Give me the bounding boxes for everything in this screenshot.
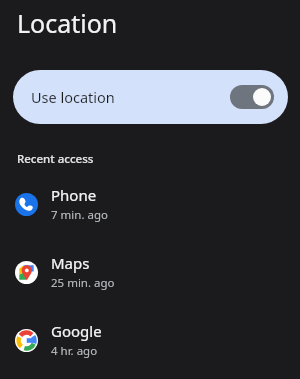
staticText: 25 min. ago bbox=[51, 275, 115, 291]
staticText: Recent access bbox=[17, 151, 94, 167]
button[interactable]: Use location toggle, on bbox=[230, 85, 274, 109]
button[interactable]: Maps bbox=[0, 253, 300, 291]
staticText: Location bbox=[17, 6, 118, 40]
button[interactable]: Google bbox=[0, 321, 300, 359]
staticText: Use location bbox=[31, 87, 230, 107]
staticText: Phone bbox=[51, 185, 97, 205]
staticText: 4 hr. ago bbox=[51, 343, 98, 359]
staticText: Maps bbox=[51, 253, 90, 273]
button[interactable]: Use location bbox=[13, 70, 288, 124]
staticText: 7 min. ago bbox=[51, 207, 108, 223]
staticText: Google bbox=[51, 321, 102, 341]
button[interactable]: Phone bbox=[0, 185, 300, 223]
